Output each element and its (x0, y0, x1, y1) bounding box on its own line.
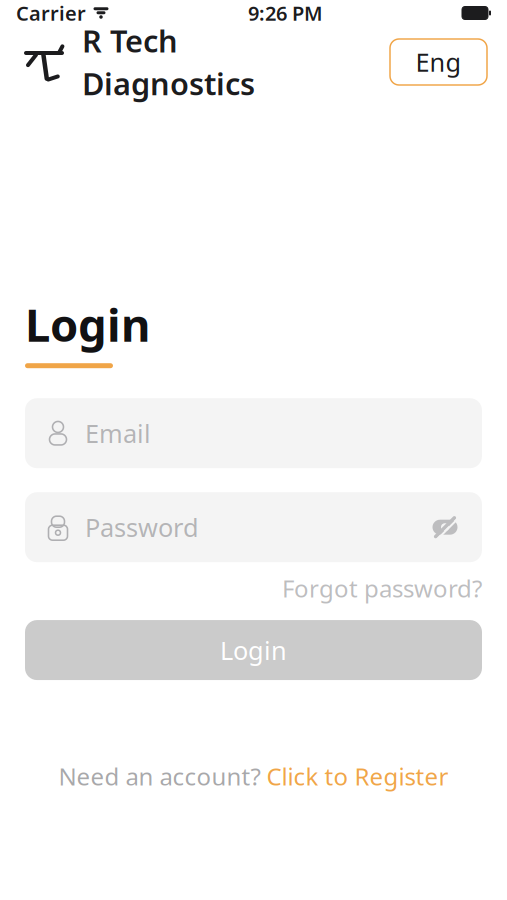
staticText: Diagnostics (82, 63, 255, 104)
staticText: Need an account? (58, 760, 260, 792)
staticText: R Tech (82, 20, 178, 61)
staticText: Password (85, 510, 199, 544)
staticText: Carrier (16, 0, 86, 26)
staticText: Forgot password? (282, 572, 482, 604)
button[interactable]: Forgot password? (282, 572, 482, 604)
staticText: Eng (415, 45, 461, 79)
staticText: Email (85, 416, 151, 450)
staticText: Click to Register (266, 760, 448, 792)
button[interactable]: Show password (428, 512, 462, 542)
button[interactable]: Eng (390, 39, 487, 85)
button[interactable]: Login (25, 620, 482, 680)
staticText: 9:26 PM (248, 0, 323, 26)
button[interactable]: Need an account? (58, 760, 448, 792)
staticText: Login (220, 633, 287, 667)
staticText: Login (25, 294, 150, 354)
